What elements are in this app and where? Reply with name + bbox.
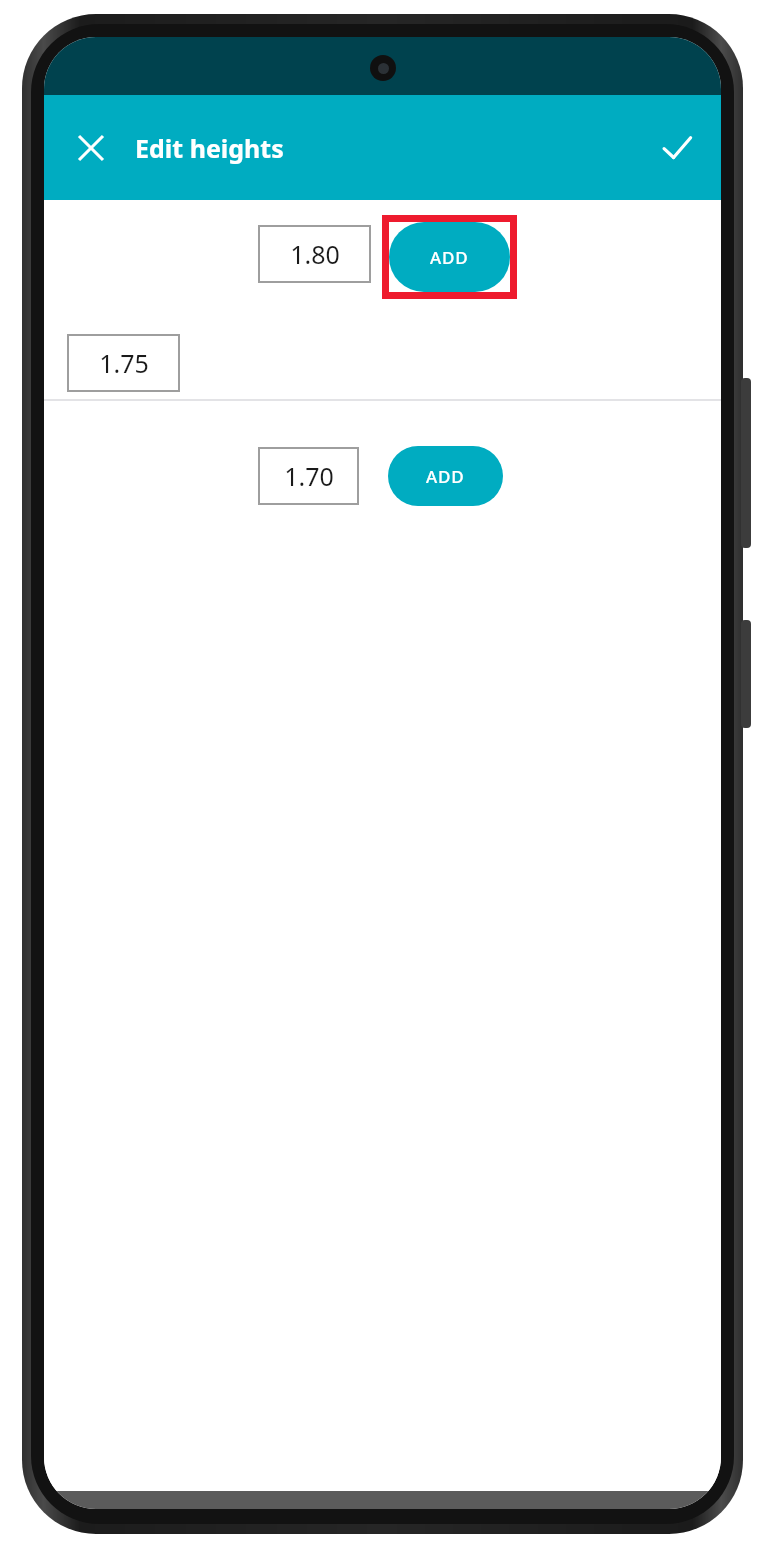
button[interactable]: 1.80 bbox=[258, 225, 371, 283]
button[interactable]: 1.75 bbox=[67, 334, 180, 392]
button[interactable]: Confirm bbox=[643, 114, 711, 182]
staticText: ADD bbox=[430, 246, 469, 269]
button[interactable]: 1.70 bbox=[258, 447, 359, 505]
button[interactable]: ADD bbox=[389, 222, 510, 292]
button[interactable]: Close bbox=[58, 115, 124, 181]
button[interactable]: ADD bbox=[388, 446, 503, 506]
staticText: ADD bbox=[426, 465, 465, 488]
staticText: 1.70 bbox=[284, 459, 334, 493]
staticText: 1.75 bbox=[99, 346, 149, 380]
staticText: Edit heights bbox=[135, 131, 284, 165]
staticText: 1.80 bbox=[290, 237, 340, 271]
